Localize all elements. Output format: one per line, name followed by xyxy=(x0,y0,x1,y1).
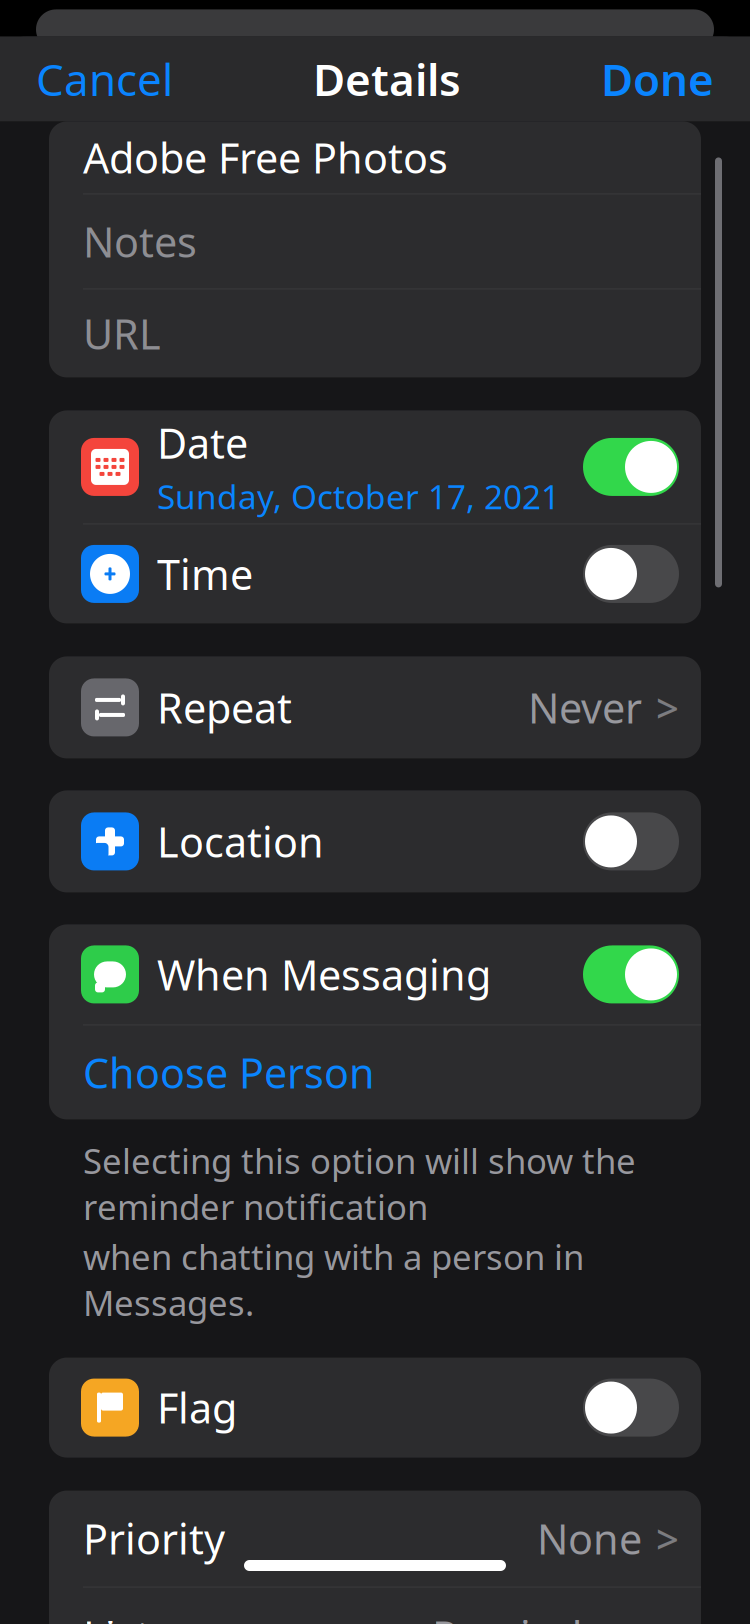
staticText: Cancel xyxy=(36,50,173,108)
staticText: Details xyxy=(313,50,461,108)
staticText: Time xyxy=(157,546,253,601)
button[interactable]: List xyxy=(49,1588,701,1624)
staticText: Priority xyxy=(83,1511,225,1566)
staticText: when chatting with a person in Messages. xyxy=(83,1233,584,1326)
button[interactable]: Adobe Free Photos xyxy=(49,121,701,193)
staticText: Sunday, October 17, 2021 xyxy=(157,474,560,518)
button[interactable]: Cancel xyxy=(36,50,173,108)
staticText: Never xyxy=(528,680,642,735)
button[interactable]: When Messaging xyxy=(49,924,701,1024)
button[interactable]: Repeat xyxy=(49,656,701,758)
staticText: None xyxy=(537,1511,642,1566)
staticText: > xyxy=(656,681,679,734)
staticText: List xyxy=(83,1608,151,1624)
button[interactable]: Priority xyxy=(49,1491,701,1587)
staticText: Location xyxy=(157,814,324,869)
button[interactable]: URL xyxy=(49,289,701,377)
staticText: URL xyxy=(83,306,161,361)
button[interactable]: Flag xyxy=(49,1358,701,1458)
staticText: When Messaging xyxy=(157,947,491,1002)
button[interactable]: Time xyxy=(49,524,701,623)
staticText: Selecting this option will show the remi… xyxy=(83,1137,636,1229)
staticText: > xyxy=(656,1512,679,1565)
staticText: Repeat xyxy=(157,680,292,735)
button[interactable]: Notes xyxy=(49,194,701,288)
button[interactable]: Location xyxy=(49,790,701,892)
button[interactable]: Done xyxy=(601,50,714,108)
staticText: Reminders xyxy=(432,1608,642,1624)
staticText: Adobe Free Photos xyxy=(83,130,448,185)
staticText: Done xyxy=(601,50,714,108)
button[interactable]: Choose Person xyxy=(49,1025,701,1119)
staticText: Notes xyxy=(83,214,197,269)
staticText: Flag xyxy=(157,1380,237,1435)
button[interactable]: Date xyxy=(49,410,701,523)
staticText: Choose Person xyxy=(83,1045,375,1100)
staticText: Date xyxy=(157,415,248,470)
